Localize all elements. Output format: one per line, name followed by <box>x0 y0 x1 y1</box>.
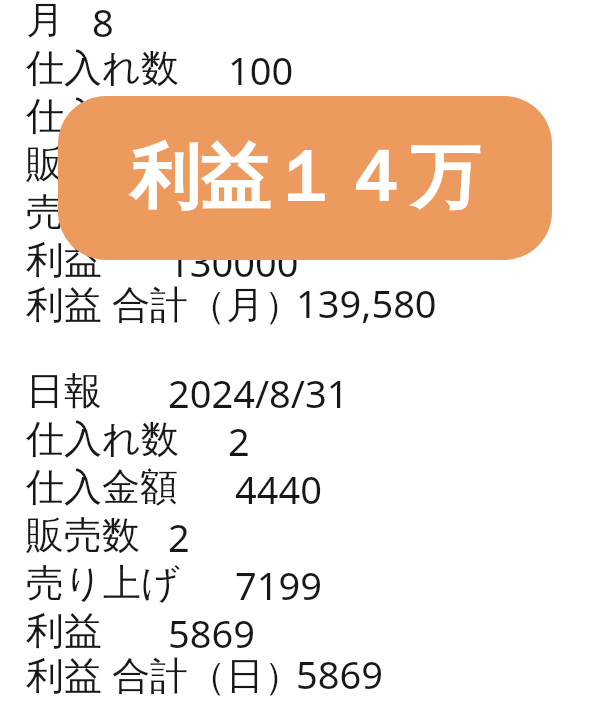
staticText: 月 <box>26 0 64 44</box>
staticText: 販売数 <box>26 511 140 559</box>
staticText: 売り上げ <box>26 188 180 236</box>
staticText: 日報 <box>26 367 102 415</box>
staticText: 利益 合計（日） <box>26 648 302 700</box>
staticText: 139,580 <box>296 277 437 329</box>
staticText: 2 <box>228 415 250 467</box>
staticText: 仕入れ数 <box>26 415 179 463</box>
staticText: 100 <box>228 44 294 96</box>
staticText: 130000 <box>228 92 359 144</box>
staticText: 利益 <box>26 607 102 655</box>
staticText: 利益 <box>26 236 102 284</box>
staticText: 販売数 <box>26 140 140 188</box>
staticText: 5869 <box>296 648 383 700</box>
staticText: 売り上げ <box>26 559 180 607</box>
button[interactable]: 利益14万 ハイライト <box>58 96 552 260</box>
staticText: 4440 <box>235 463 322 515</box>
staticText: 8 <box>92 0 114 48</box>
staticText: 利益１４万 <box>130 134 480 222</box>
staticText: 130000 <box>168 236 299 288</box>
staticText: 仕入れ数 <box>26 44 179 92</box>
staticText: 2 <box>168 511 190 563</box>
staticText: 仕入金額 <box>26 463 178 511</box>
staticText: 利益 合計（月） <box>26 277 302 329</box>
staticText: 260 <box>185 140 251 192</box>
staticText: 5869 <box>168 607 255 659</box>
staticText: 269580 <box>228 188 359 240</box>
staticText: 2024/8/31 <box>168 367 349 419</box>
staticText: 仕入金額 <box>26 92 178 140</box>
staticText: 7199 <box>235 559 322 611</box>
